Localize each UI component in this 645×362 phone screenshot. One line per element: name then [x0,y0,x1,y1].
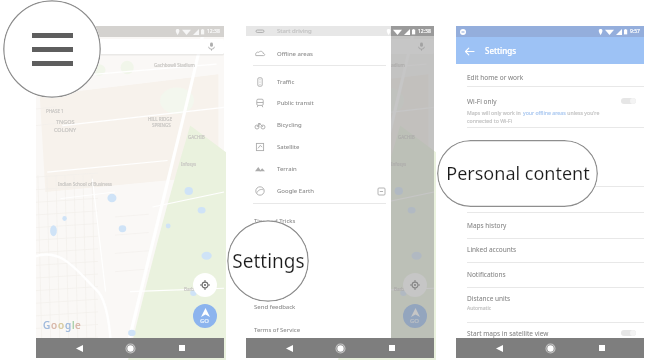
staticText: Google Earth [277,187,314,195]
button[interactable]: Tips and Tricks [246,212,391,230]
staticText: 9:57 [630,28,640,35]
button[interactable]: Personal content [456,161,644,183]
button[interactable]: Start driving [246,22,391,40]
button[interactable]: Settings [246,255,391,273]
staticText: Settings [485,45,517,56]
staticText: Gachbowli Stadium [154,62,195,68]
staticText: Start maps in satellite view [467,329,549,338]
staticText: G [43,318,51,332]
staticText: COLONY [54,126,77,133]
button[interactable]: Recents [593,339,611,357]
staticText: e [75,318,81,332]
button[interactable]: Back [280,339,298,357]
button[interactable]: Start navigation [193,304,217,328]
button[interactable]: Send feedback [246,298,391,316]
button[interactable]: Home [331,339,349,357]
staticText: Infosys [391,161,407,167]
staticText: Linked accounts [467,245,517,254]
button[interactable]: Edit home or work [456,66,644,88]
staticText: Settings [232,248,305,274]
button[interactable]: Notifications [456,263,644,285]
staticText: GO [200,317,210,325]
staticText: Wi-Fi only [467,97,497,106]
staticText: 12:38 [418,28,431,35]
staticText: l [72,318,75,332]
button[interactable]: Terrain [246,160,391,178]
staticText: Indian School of Business [58,181,112,187]
button[interactable]: Back [490,339,508,357]
staticText: Edit home or work [467,73,524,82]
button[interactable]: Traffic [246,73,391,91]
staticText: GO [410,317,420,325]
button[interactable]: Terms of Service [246,321,391,339]
staticText: SPRINGS [152,122,171,128]
staticText: Terms of Service [254,326,301,334]
button[interactable]: Open navigation menu [3,0,101,98]
button[interactable]: Linked accounts [456,238,644,260]
staticText: Gachbowli Stadium [364,62,405,68]
button[interactable]: Home [121,339,139,357]
staticText: o [51,318,58,332]
staticText: PHASE 1 [46,108,64,114]
staticText: Tips and Tricks [254,217,296,225]
button[interactable]: Maps history [456,214,644,236]
staticText: Public transit [277,99,314,107]
staticText: Distance units [467,294,511,303]
staticText: Barbeq [184,286,200,292]
button[interactable]: Back [70,339,88,357]
staticText: Terrain [277,165,297,173]
button[interactable]: Wi-Fi only [456,90,644,112]
staticText: GACHIB [188,134,205,140]
staticText: TNGOS [266,118,285,125]
staticText: Personal content [446,161,590,186]
button[interactable]: Distance units [456,287,644,309]
button[interactable]: Search here [40,39,224,54]
staticText: Barbeq [394,286,410,292]
staticText: Personal content [467,168,519,177]
staticText: Settings [254,260,277,268]
staticText: Start driving [277,27,312,35]
staticText: Send feedback [254,303,296,311]
staticText: g [65,318,72,332]
button[interactable]: Recents [173,339,191,357]
button[interactable]: Satellite [246,138,391,156]
staticText: Infosys [181,161,197,167]
staticText: o [58,318,65,332]
button[interactable]: Recents [383,339,401,357]
staticText: Search here [64,43,98,51]
staticText: Maps history [467,221,507,230]
button[interactable]: Home [541,339,559,357]
staticText: Offline areas [277,50,313,58]
staticText: 12:38 [207,28,220,35]
staticText: your offline areas [523,109,566,116]
staticText: TNGOS [56,118,75,125]
staticText: unless you're [566,109,600,116]
staticText: COLONY [264,126,287,133]
button[interactable]: Public transit [246,94,391,112]
button[interactable]: Help [246,234,391,252]
staticText: HILL RIDGE [148,116,173,122]
button[interactable]: Offline areas [246,45,391,63]
staticText: Automatic [467,305,492,312]
staticText: Notifications [467,270,506,279]
staticText: Maps will only work in [467,109,523,116]
button[interactable]: Start maps in satellite view [456,322,644,344]
staticText: connected to Wi-Fi [467,117,513,124]
staticText: Traffic [277,78,295,86]
staticText: Bicycling [277,121,302,129]
staticText: Satellite [277,143,300,151]
staticText: GACHIB [398,134,415,140]
button[interactable]: Google Earth [246,182,391,200]
button[interactable]: Back [462,44,476,58]
button[interactable]: My location [193,273,217,297]
button[interactable]: Bicycling [246,116,391,134]
